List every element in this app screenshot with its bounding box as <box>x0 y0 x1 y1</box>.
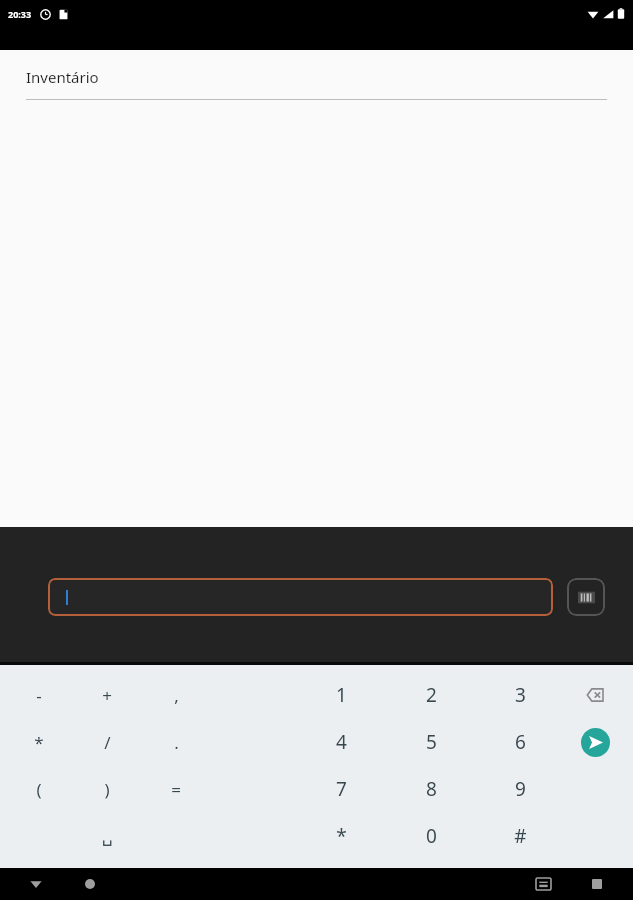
staticText: + <box>102 684 112 707</box>
staticText: 6 <box>515 729 526 755</box>
staticText: 9 <box>515 776 526 802</box>
button[interactable]: + <box>73 672 141 718</box>
button[interactable]: Enviar <box>567 719 623 765</box>
button[interactable]: ( <box>5 766 73 812</box>
staticText: 0 <box>426 823 437 849</box>
button[interactable]: / <box>73 719 141 765</box>
staticText: / <box>104 731 111 754</box>
staticText: 8 <box>426 776 437 802</box>
staticText: ␣ <box>102 826 113 846</box>
staticText: 5 <box>426 729 437 755</box>
button[interactable]: 4 <box>307 719 375 765</box>
staticText: 1 <box>336 682 347 708</box>
button[interactable]: # <box>486 813 554 859</box>
staticText: ( <box>36 778 42 801</box>
button[interactable]: ␣ <box>73 813 141 859</box>
button[interactable]: Início <box>72 868 108 900</box>
staticText: Inventário <box>26 67 99 87</box>
button[interactable]: 5 <box>397 719 465 765</box>
staticText: . <box>174 731 179 754</box>
button[interactable] <box>48 578 553 616</box>
button[interactable]: Apagar <box>567 672 623 718</box>
button[interactable]: 9 <box>486 766 554 812</box>
button[interactable]: ) <box>73 766 141 812</box>
button[interactable]: 3 <box>486 672 554 718</box>
staticText: - <box>36 684 42 707</box>
button[interactable]: . <box>142 719 210 765</box>
staticText: * <box>336 823 347 849</box>
staticText: 2 <box>426 682 437 708</box>
button[interactable]: , <box>142 672 210 718</box>
staticText: ) <box>104 778 110 801</box>
staticText: # <box>514 823 527 849</box>
button[interactable]: = <box>142 766 210 812</box>
button[interactable]: 2 <box>397 672 465 718</box>
staticText: = <box>171 778 181 801</box>
button[interactable]: 0 <box>397 813 465 859</box>
staticText: , <box>174 684 179 707</box>
button[interactable]: - <box>5 672 73 718</box>
staticText: * <box>34 731 44 754</box>
button[interactable]: Escanear código de barras <box>567 578 605 616</box>
staticText: 7 <box>336 776 347 802</box>
button[interactable]: * <box>307 813 375 859</box>
button[interactable]: 6 <box>486 719 554 765</box>
button[interactable]: Teclado <box>525 868 561 900</box>
button[interactable]: Voltar <box>18 868 54 900</box>
staticText: 4 <box>336 729 347 755</box>
button[interactable]: 7 <box>307 766 375 812</box>
button[interactable]: 1 <box>307 672 375 718</box>
staticText: 20:33 <box>8 8 32 20</box>
button[interactable]: 8 <box>397 766 465 812</box>
button[interactable]: * <box>5 719 73 765</box>
staticText: 3 <box>515 682 526 708</box>
button[interactable]: Recentes <box>579 868 615 900</box>
